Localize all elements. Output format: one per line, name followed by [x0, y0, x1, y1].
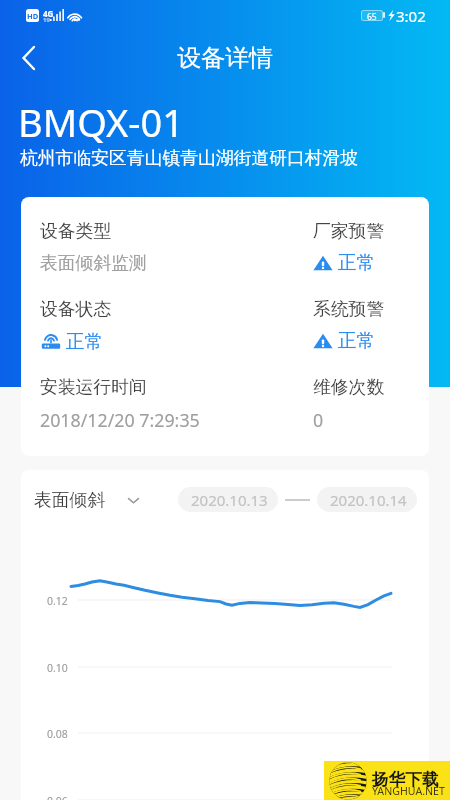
staticText: 0.06 [47, 794, 68, 800]
staticText: 维修次数 [313, 376, 385, 398]
button[interactable]: 2020.10.14 [317, 487, 417, 512]
staticText: 表面倾斜 [34, 489, 106, 511]
staticText: 系统预警 [313, 298, 385, 320]
staticText: 0.10 [47, 661, 68, 675]
button[interactable]: 表面倾斜 [34, 489, 139, 511]
staticText: 65 [367, 11, 377, 20]
staticText: 设备类型 [40, 220, 112, 242]
staticText: 设备状态 [40, 298, 112, 320]
staticText: 2020.10.13 [191, 490, 268, 510]
staticText: 正常 [338, 329, 376, 352]
staticText: 杭州市临安区青山镇青山湖街道研口村滑坡 [20, 147, 359, 169]
staticText: BMQX-01 [18, 96, 185, 148]
button[interactable]: Back [6, 43, 50, 73]
staticText: HD [27, 11, 39, 21]
staticText: 设备详情 [177, 43, 273, 73]
staticText: 正常 [338, 251, 376, 274]
staticText: 安装运行时间 [40, 376, 147, 398]
staticText: 2018/12/20 7:29:35 [40, 408, 200, 432]
staticText: 0.12 [47, 594, 68, 608]
staticText: 3:02 [396, 6, 426, 26]
staticText: 厂家预警 [313, 220, 385, 242]
staticText: 2020.10.14 [330, 490, 407, 510]
staticText: 扬华下载 [372, 769, 439, 790]
staticText: 正常 [66, 330, 104, 353]
staticText: 4G [43, 8, 54, 19]
staticText: YANGHUA.NET [372, 784, 445, 798]
button[interactable]: 2020.10.13 [178, 487, 278, 512]
staticText: 0 [313, 408, 324, 432]
staticText: 0.08 [47, 727, 68, 741]
staticText: 19 [43, 16, 50, 24]
staticText: 表面倾斜监测 [40, 252, 147, 274]
